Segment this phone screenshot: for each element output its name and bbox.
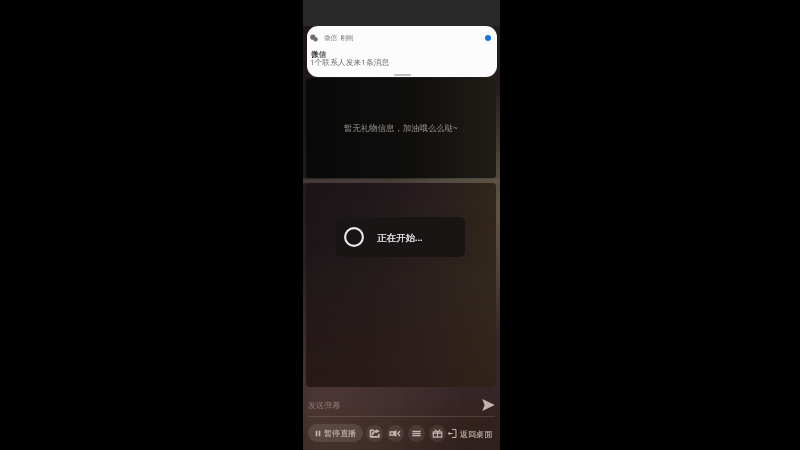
staticText: 返回桌面: [460, 429, 492, 439]
staticText: 正在开始...: [377, 231, 423, 244]
button[interactable]: Mute: [387, 425, 404, 442]
other: Send: [482, 399, 495, 411]
button[interactable]: 暂停直播: [308, 424, 363, 442]
button[interactable]: 返回桌面: [447, 428, 492, 439]
button[interactable]: Gift: [429, 425, 446, 442]
staticText: 微信 刚刚: [324, 33, 354, 42]
staticText: 暂停直播: [324, 428, 356, 438]
staticText: 微信: [311, 50, 326, 59]
staticText: 发送弹幕: [308, 400, 340, 410]
staticText: 1个联系人发来1条消息: [310, 57, 390, 68]
button[interactable]: Share: [366, 425, 383, 442]
button[interactable]: Menu: [408, 425, 425, 442]
button[interactable]: 微信 刚刚: [307, 26, 497, 77]
staticText: 暂无礼物信息，加油哦么么哒~: [344, 122, 458, 133]
